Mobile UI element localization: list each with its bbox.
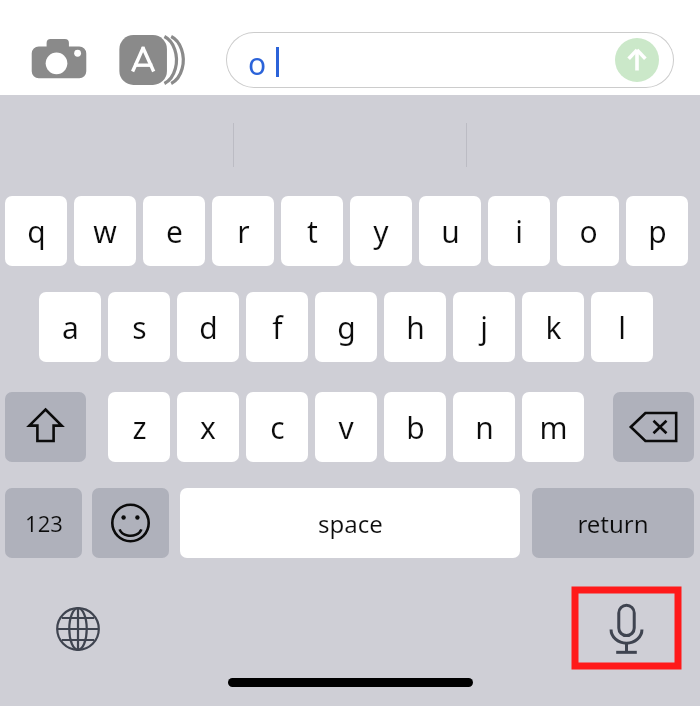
button[interactable]: space (180, 488, 520, 558)
staticText: p (648, 211, 667, 252)
button[interactable]: v (315, 392, 377, 462)
button[interactable]: c (246, 392, 308, 462)
staticText: return (577, 507, 649, 540)
button[interactable]: b (384, 392, 446, 462)
button[interactable]: q (5, 196, 67, 266)
staticText: b (406, 407, 425, 448)
button[interactable]: a (39, 292, 101, 362)
button[interactable]: u (419, 196, 481, 266)
staticText: f (272, 307, 283, 348)
button[interactable]: l (591, 292, 653, 362)
staticText: i (515, 211, 523, 252)
staticText: u (441, 211, 460, 252)
staticText: k (545, 307, 562, 348)
button[interactable]: Backspace (613, 392, 694, 462)
button[interactable]: Shift (5, 392, 86, 462)
button[interactable]: p (626, 196, 688, 266)
button[interactable]: w (74, 196, 136, 266)
staticText: w (93, 211, 117, 252)
staticText: c (270, 407, 285, 448)
button[interactable]: r (212, 196, 274, 266)
button[interactable]: s (108, 292, 170, 362)
button[interactable]: g (315, 292, 377, 362)
button[interactable]: i (488, 196, 550, 266)
staticText: r (237, 211, 250, 252)
staticText: v (338, 407, 354, 448)
button[interactable]: h (384, 292, 446, 362)
staticText: o (579, 211, 598, 252)
button[interactable]: Change keyboard language (52, 603, 104, 655)
button[interactable]: j (453, 292, 515, 362)
button[interactable]: f (246, 292, 308, 362)
staticText: z (132, 407, 147, 448)
staticText: h (406, 307, 425, 348)
button[interactable]: d (177, 292, 239, 362)
button[interactable]: e (143, 196, 205, 266)
staticText: o (248, 43, 267, 84)
staticText: g (337, 307, 356, 348)
button[interactable]: y (350, 196, 412, 266)
staticText: 123 (25, 508, 63, 538)
staticText: m (539, 407, 568, 448)
staticText: j (480, 307, 488, 348)
staticText: x (200, 407, 216, 448)
button[interactable]: Emoji (92, 488, 169, 558)
staticText: s (132, 307, 147, 348)
button[interactable]: o (557, 196, 619, 266)
staticText: y (373, 211, 389, 252)
staticText: e (166, 211, 183, 252)
button[interactable]: m (522, 392, 584, 462)
staticText: a (62, 307, 79, 348)
button[interactable]: z (108, 392, 170, 462)
button[interactable]: 123 (5, 488, 82, 558)
button[interactable]: App Store (118, 34, 186, 86)
button[interactable]: k (522, 292, 584, 362)
button[interactable]: return (532, 488, 694, 558)
button[interactable]: Camera (28, 36, 90, 84)
staticText: q (27, 211, 46, 252)
staticText: d (199, 307, 218, 348)
button[interactable]: Dictation microphone (575, 590, 678, 666)
button[interactable]: x (177, 392, 239, 462)
button[interactable]: t (281, 196, 343, 266)
staticText: l (618, 307, 626, 348)
staticText: space (318, 507, 383, 540)
button[interactable]: o (226, 32, 674, 88)
staticText: n (475, 407, 494, 448)
staticText: t (307, 211, 318, 252)
button[interactable]: n (453, 392, 515, 462)
button[interactable]: Send (615, 38, 659, 82)
